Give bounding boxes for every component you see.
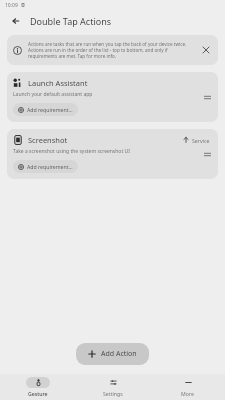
- button[interactable]: Gesture: [0, 374, 75, 400]
- staticText: Actions are tasks that are run when you …: [28, 41, 196, 59]
- button[interactable]: Actions are tasks that are run when you …: [7, 35, 218, 65]
- staticText: Launch Assistant: [28, 78, 88, 88]
- staticText: Settings: [103, 390, 123, 397]
- button[interactable]: Settings: [75, 374, 150, 400]
- staticText: 10:09: [5, 2, 18, 9]
- staticText: More: [181, 390, 194, 397]
- button[interactable]: Dismiss: [200, 44, 212, 56]
- button[interactable]: Add Action: [76, 343, 149, 365]
- button[interactable]: More: [150, 374, 225, 400]
- staticText: Gesture: [28, 390, 48, 397]
- button[interactable]: Add requirement...: [13, 103, 78, 116]
- button[interactable]: Launch Assistant: [7, 72, 218, 122]
- button[interactable]: Reorder: [201, 148, 213, 160]
- button[interactable]: Reorder: [201, 91, 213, 103]
- staticText: Take a screenshot using the system scree…: [13, 148, 130, 155]
- button[interactable]: Screenshot: [7, 129, 218, 179]
- staticText: Double Tap Actions: [30, 15, 112, 27]
- staticText: Launch your default assistant app: [13, 91, 93, 98]
- staticText: Add requirement...: [27, 163, 73, 170]
- staticText: Screenshot: [28, 135, 68, 145]
- button[interactable]: Add requirement...: [13, 160, 78, 173]
- staticText: Service: [192, 137, 210, 144]
- staticText: Add requirement...: [27, 106, 73, 113]
- button[interactable]: Back: [8, 13, 24, 29]
- staticText: Add Action: [101, 349, 137, 359]
